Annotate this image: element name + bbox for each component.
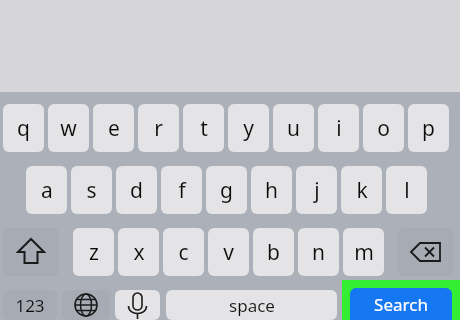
staticText: s [86, 176, 97, 205]
button[interactable]: Dictate [115, 290, 160, 320]
button[interactable]: Backspace [398, 228, 454, 276]
staticText: j [314, 176, 320, 205]
button[interactable]: z [73, 228, 114, 276]
staticText: space [229, 294, 275, 317]
button[interactable]: n [298, 228, 339, 276]
staticText: x [133, 238, 145, 267]
staticText: n [312, 238, 325, 267]
staticText: u [287, 114, 300, 143]
button[interactable]: i [318, 104, 359, 152]
staticText: e [108, 114, 120, 143]
button[interactable]: space [166, 290, 337, 320]
staticText: w [60, 114, 77, 143]
staticText: o [377, 114, 390, 143]
staticText: Search [374, 293, 428, 316]
staticText: y [243, 114, 254, 143]
staticText: 123 [15, 294, 45, 317]
staticText: r [154, 114, 163, 143]
button[interactable]: m [343, 228, 384, 276]
button[interactable]: o [363, 104, 404, 152]
button[interactable]: Switch keyboard [62, 290, 110, 320]
staticText: b [267, 238, 280, 267]
staticText: k [356, 176, 368, 205]
staticText: h [265, 176, 278, 205]
staticText: g [220, 176, 233, 205]
button[interactable]: y [228, 104, 269, 152]
button[interactable]: q [3, 104, 44, 152]
button[interactable]: d [116, 166, 157, 214]
button[interactable]: p [408, 104, 449, 152]
button[interactable]: x [118, 228, 159, 276]
staticText: c [178, 238, 189, 267]
button[interactable]: Shift [3, 228, 59, 276]
button[interactable]: b [253, 228, 294, 276]
button[interactable]: v [208, 228, 249, 276]
button[interactable]: f [161, 166, 202, 214]
staticText: d [130, 176, 143, 205]
button[interactable]: Search [350, 288, 452, 320]
staticText: l [404, 176, 410, 205]
button[interactable]: h [251, 166, 292, 214]
staticText: v [223, 238, 234, 267]
button[interactable]: l [386, 166, 427, 214]
staticText: q [17, 114, 30, 143]
button[interactable]: j [296, 166, 337, 214]
staticText: m [354, 238, 374, 267]
button[interactable]: e [93, 104, 134, 152]
button[interactable]: k [341, 166, 382, 214]
staticText: z [89, 238, 99, 267]
button[interactable]: s [71, 166, 112, 214]
button[interactable]: r [138, 104, 179, 152]
button[interactable]: a [26, 166, 67, 214]
staticText: p [422, 114, 435, 143]
staticText: f [178, 176, 186, 205]
button[interactable]: 123 [3, 290, 57, 320]
staticText: a [41, 176, 53, 205]
staticText: i [336, 114, 342, 143]
button[interactable]: t [183, 104, 224, 152]
staticText: t [200, 114, 208, 143]
button[interactable]: w [48, 104, 89, 152]
button[interactable]: u [273, 104, 314, 152]
button[interactable]: g [206, 166, 247, 214]
button[interactable]: c [163, 228, 204, 276]
